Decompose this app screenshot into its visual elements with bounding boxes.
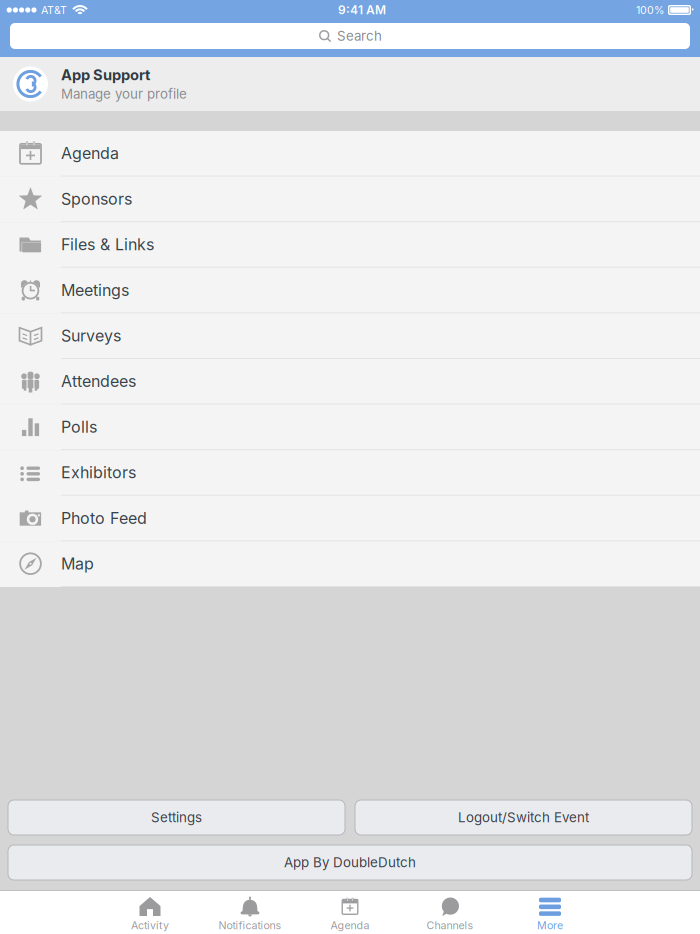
button[interactable]: Photo Feed (0, 496, 700, 541)
staticText: Agenda (330, 919, 369, 932)
staticText: Exhibitors (61, 463, 136, 482)
staticText: Agenda (61, 144, 119, 163)
button[interactable]: Exhibitors (0, 450, 700, 496)
staticText: AT&T (41, 3, 67, 16)
staticText: Files & Links (61, 235, 154, 254)
staticText: Surveys (61, 326, 121, 345)
staticText: Logout/Switch Event (458, 809, 589, 825)
staticText: Manage your profile (61, 86, 187, 102)
staticText: Polls (61, 417, 97, 437)
staticText: 100% (636, 3, 664, 16)
button[interactable]: More (500, 891, 600, 934)
staticText: Attendees (61, 372, 136, 391)
staticText: Activity (131, 919, 169, 932)
button[interactable]: Channels (400, 891, 500, 934)
button[interactable]: Notifications (200, 891, 300, 934)
button[interactable]: Sponsors (0, 177, 700, 222)
staticText: Channels (426, 919, 473, 932)
button[interactable]: App Support (0, 57, 700, 111)
staticText: Settings (151, 809, 202, 825)
staticText: Meetings (61, 280, 129, 300)
button[interactable]: Agenda (0, 131, 700, 177)
button[interactable]: Attendees (0, 359, 700, 405)
button[interactable]: Settings (8, 800, 345, 835)
button[interactable]: Activity (100, 891, 200, 934)
button[interactable]: Surveys (0, 313, 700, 359)
staticText: App By DoubleDutch (284, 854, 416, 870)
button[interactable]: App By DoubleDutch (8, 845, 692, 880)
button[interactable]: Map (0, 541, 700, 587)
staticText: Search (337, 28, 382, 44)
button[interactable]: Files & Links (0, 222, 700, 268)
staticText: More (537, 919, 563, 932)
staticText: App Support (61, 66, 150, 84)
staticText: 9:41 AM (338, 3, 386, 17)
button[interactable]: Polls (0, 405, 700, 450)
button[interactable]: Meetings (0, 268, 700, 313)
staticText: Notifications (218, 919, 281, 932)
staticText: Map (61, 554, 94, 573)
button[interactable]: Agenda (300, 891, 400, 934)
button[interactable]: Logout/Switch Event (355, 800, 692, 835)
staticText: Photo Feed (61, 508, 147, 528)
staticText: Sponsors (61, 189, 132, 209)
